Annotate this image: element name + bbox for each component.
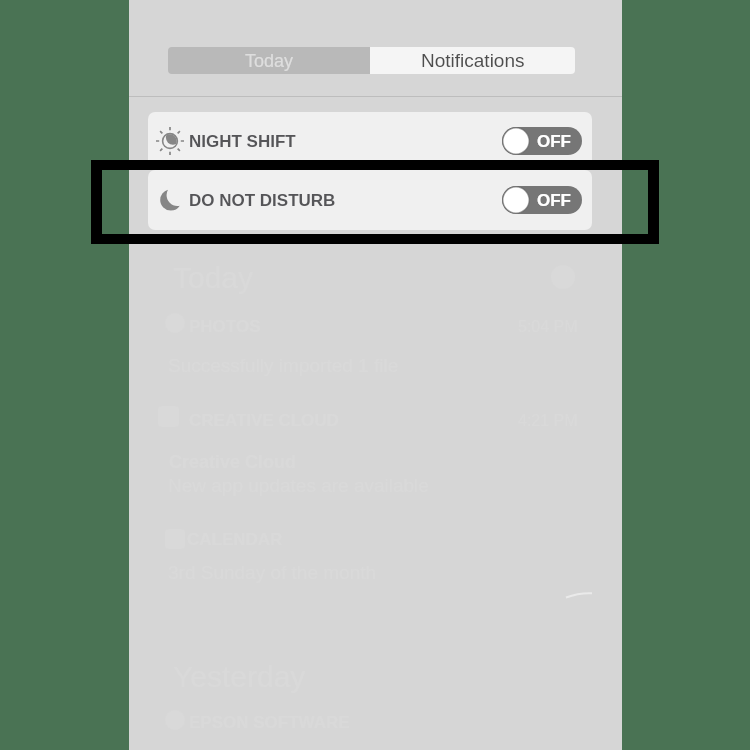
staticText: OFF bbox=[537, 132, 571, 151]
button[interactable]: Notifications bbox=[370, 47, 575, 74]
button[interactable]: Toggle, off bbox=[502, 127, 582, 155]
staticText: Today bbox=[245, 51, 294, 71]
staticText: DO NOT DISTURB bbox=[189, 191, 336, 210]
button[interactable]: Toggle, off bbox=[502, 186, 582, 214]
button[interactable]: DO NOT DISTURB bbox=[148, 170, 592, 230]
staticText: NIGHT SHIFT bbox=[189, 132, 296, 151]
staticText: OFF bbox=[537, 191, 571, 210]
button[interactable]: NIGHT SHIFT bbox=[148, 112, 592, 170]
staticText: Notifications bbox=[421, 50, 525, 71]
button[interactable]: Today bbox=[168, 47, 370, 74]
